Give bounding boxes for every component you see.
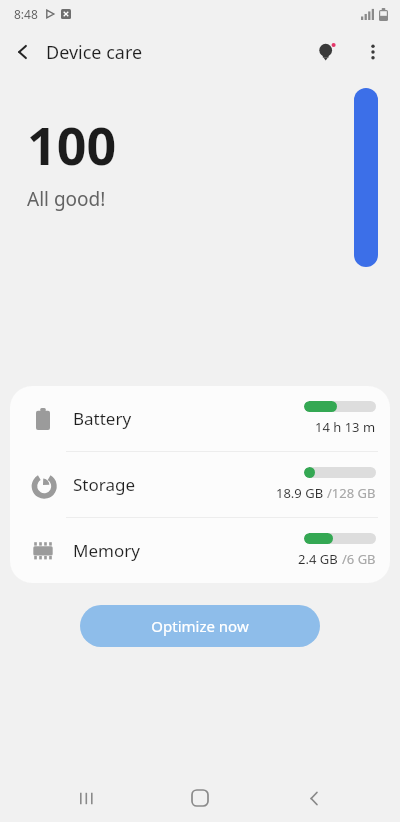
button[interactable]: Back [0,29,46,75]
staticText: /6 GB [342,550,376,568]
button[interactable]: Tips [304,29,350,75]
staticText: Storage [73,473,136,496]
staticText: Memory [73,539,140,562]
button[interactable]: Recent apps [58,774,114,822]
button[interactable]: Home [172,774,228,822]
button[interactable]: Battery [10,386,390,451]
button[interactable]: Optimize now [80,605,320,647]
button[interactable]: Memory [10,518,390,583]
staticText: 8:48 [14,6,38,22]
staticText: Battery [73,407,132,430]
staticText: 2.4 GB [298,550,342,568]
staticText: Device care [46,40,143,65]
staticText: 100 [27,109,117,180]
staticText: 14 h 13 m [315,418,376,436]
button[interactable]: Back [286,774,342,822]
button[interactable]: Storage [10,452,390,517]
button[interactable]: More options [350,29,396,75]
staticText: All good! [27,186,106,212]
staticText: 18.9 GB [276,484,327,502]
staticText: Optimize now [151,616,249,636]
staticText: /128 GB [327,484,376,502]
